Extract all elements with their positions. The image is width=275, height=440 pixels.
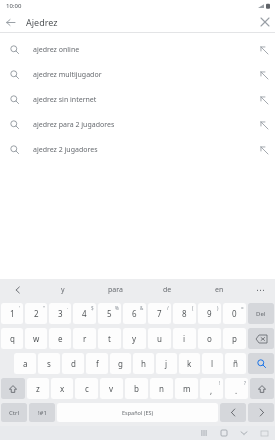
staticText: 2 (34, 308, 39, 319)
staticText: t (108, 333, 111, 344)
button[interactable] (248, 353, 274, 374)
button[interactable]: 2 (25, 303, 47, 324)
button[interactable]: Insert suggestion (253, 114, 275, 136)
button[interactable]: Right (248, 403, 274, 422)
button[interactable]: Home (219, 428, 229, 438)
button[interactable]: ajedrez online (0, 37, 275, 62)
staticText: 8 (182, 308, 187, 319)
staticText: p (232, 333, 237, 344)
button[interactable]: Insert suggestion (253, 139, 275, 161)
button[interactable]: en (193, 279, 245, 301)
staticText: de (163, 285, 172, 295)
button[interactable]: p (223, 328, 246, 349)
button[interactable]: Español (ES) (57, 403, 218, 422)
button[interactable]: x (51, 378, 73, 399)
button[interactable]: Insert suggestion (253, 64, 275, 86)
button[interactable] (248, 328, 274, 349)
button[interactable]: y (36, 279, 89, 301)
button[interactable]: . (225, 378, 248, 399)
staticText: ) (217, 305, 219, 311)
button[interactable]: s (38, 353, 60, 374)
button[interactable]: Left (220, 403, 246, 422)
button[interactable]: de (141, 279, 193, 301)
staticText: f (96, 358, 99, 369)
staticText: 0 (232, 308, 237, 319)
button[interactable]: Shift (250, 378, 274, 399)
button[interactable]: 3 (49, 303, 71, 324)
button[interactable]: c (75, 378, 98, 399)
button[interactable]: ajedrez sin internet (0, 87, 275, 112)
staticText: a (23, 358, 28, 369)
button[interactable]: More options (245, 279, 275, 301)
button[interactable]: d (62, 353, 84, 374)
button[interactable]: o (198, 328, 221, 349)
button[interactable]: 4 (73, 303, 96, 324)
staticText: / (167, 305, 169, 311)
button[interactable]: e (49, 328, 71, 349)
button[interactable]: , (200, 378, 223, 399)
button[interactable]: Clear (255, 12, 275, 32)
button[interactable]: para (89, 279, 141, 301)
staticText: % (115, 305, 119, 311)
staticText: Del (256, 310, 266, 318)
button[interactable]: Del (248, 303, 274, 324)
staticText: 1 (10, 308, 15, 319)
button[interactable]: i (173, 328, 196, 349)
button[interactable]: Insert suggestion (253, 89, 275, 111)
button[interactable]: Recents (199, 428, 209, 438)
staticText: q (10, 333, 15, 344)
button[interactable]: 5 (98, 303, 121, 324)
button[interactable]: a (14, 353, 36, 374)
button[interactable]: b (125, 378, 148, 399)
button[interactable]: f (86, 353, 108, 374)
button[interactable]: u (148, 328, 171, 349)
button[interactable]: 1 (1, 303, 23, 324)
button[interactable]: Hide keyboard (239, 428, 249, 438)
button[interactable]: ajedrez 2 jugadores (0, 137, 275, 162)
staticText: ajedrez 2 jugadores (33, 145, 253, 155)
button[interactable]: y (123, 328, 146, 349)
staticText: ( (192, 305, 194, 311)
staticText: i (183, 333, 186, 344)
button[interactable]: 6 (123, 303, 146, 324)
button[interactable]: r (73, 328, 96, 349)
staticText: g (118, 358, 123, 369)
button[interactable]: w (25, 328, 47, 349)
button[interactable]: v (100, 378, 123, 399)
staticText: ! (219, 380, 221, 386)
button[interactable]: Back (0, 12, 20, 32)
button[interactable]: h (133, 353, 154, 374)
button[interactable]: ajedrez multijugador (0, 62, 275, 87)
button[interactable]: !#1 (29, 403, 55, 422)
staticText: k (187, 358, 192, 369)
staticText: . (235, 385, 238, 396)
button[interactable]: Insert suggestion (253, 39, 275, 61)
button[interactable]: Keyboard layout (259, 428, 269, 438)
button[interactable]: z (27, 378, 49, 399)
button[interactable]: 9 (198, 303, 221, 324)
button[interactable]: j (156, 353, 177, 374)
staticText: r (83, 333, 87, 344)
staticText: ? (244, 380, 246, 386)
button[interactable]: q (1, 328, 23, 349)
button[interactable]: Ctrl (1, 403, 27, 422)
button[interactable]: g (110, 353, 131, 374)
button[interactable]: ñ (225, 353, 246, 374)
button[interactable]: 7 (148, 303, 171, 324)
staticText: b (134, 383, 139, 394)
button[interactable]: n (150, 378, 173, 399)
staticText: ajedrez sin internet (33, 95, 253, 105)
button[interactable]: t (98, 328, 121, 349)
button[interactable]: 0 (223, 303, 246, 324)
button[interactable]: k (179, 353, 200, 374)
button[interactable]: l (202, 353, 223, 374)
button[interactable]: ajedrez para 2 jugadores (0, 112, 275, 137)
staticText: Español (ES) (122, 409, 154, 416)
staticText: Ajedrez (26, 16, 255, 28)
staticText: n (159, 383, 164, 394)
staticText: ajedrez multijugador (33, 70, 253, 80)
button[interactable]: m (175, 378, 198, 399)
button[interactable]: Previous (0, 279, 36, 301)
button[interactable]: Shift (1, 378, 25, 399)
button[interactable]: 8 (173, 303, 196, 324)
